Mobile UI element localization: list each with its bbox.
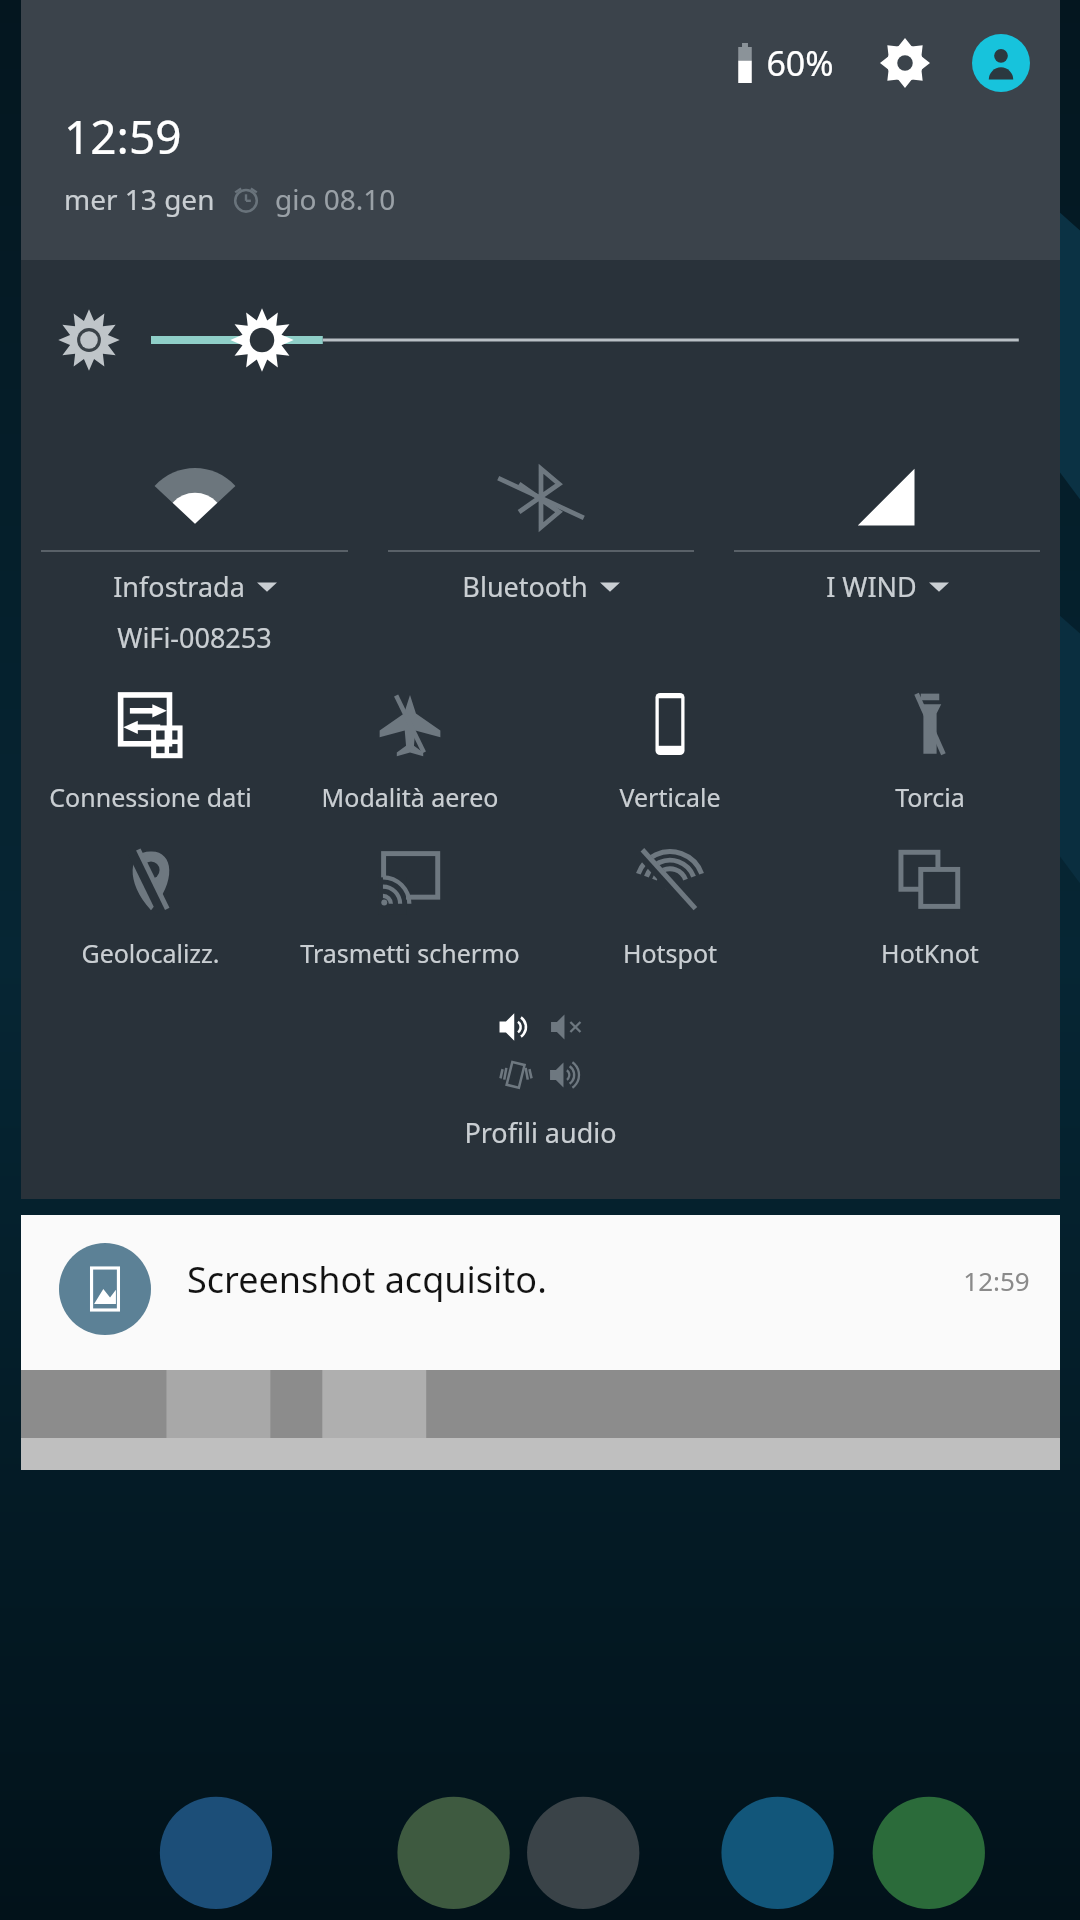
button[interactable]: Profili audio bbox=[21, 1004, 1060, 1199]
staticText: I WIND bbox=[826, 568, 917, 605]
button[interactable]: Trasmetti schermo bbox=[280, 838, 540, 970]
button[interactable]: Torcia bbox=[800, 682, 1060, 814]
staticText: 60% bbox=[766, 40, 834, 86]
staticText: 12:59 bbox=[64, 105, 182, 168]
staticText: Torcia bbox=[804, 780, 1056, 814]
button[interactable]: Hotspot bbox=[540, 838, 800, 970]
button[interactable]: Modalità aereo bbox=[280, 682, 540, 814]
staticText: Bluetooth bbox=[462, 568, 588, 605]
button[interactable] bbox=[151, 305, 1032, 375]
button[interactable]: Verticale bbox=[540, 682, 800, 814]
button[interactable]: Screenshot acquisito. bbox=[21, 1215, 1060, 1370]
staticText: Hotspot bbox=[544, 936, 796, 970]
button[interactable]: I WIND bbox=[714, 450, 1060, 605]
button[interactable]: Geolocalizz. bbox=[21, 838, 280, 970]
button[interactable]: User profile bbox=[972, 34, 1030, 92]
staticText: Connessione dati bbox=[25, 780, 276, 814]
button[interactable]: Settings bbox=[876, 34, 934, 92]
staticText: Modalità aereo bbox=[284, 780, 536, 814]
button[interactable]: HotKnot bbox=[800, 838, 1060, 970]
staticText: WiFi-008253 bbox=[117, 619, 272, 656]
staticText: Profili audio bbox=[464, 1114, 617, 1151]
staticText: Trasmetti schermo bbox=[284, 936, 536, 970]
staticText: HotKnot bbox=[804, 936, 1056, 970]
button[interactable]: Infostrada bbox=[21, 450, 368, 656]
staticText: gio 08.10 bbox=[275, 180, 396, 218]
staticText: Geolocalizz. bbox=[25, 936, 276, 970]
staticText: Verticale bbox=[544, 780, 796, 814]
staticText: mer 13 gen bbox=[64, 180, 215, 218]
staticText: 12:59 bbox=[963, 1263, 1030, 1298]
staticText: Screenshot acquisito. bbox=[187, 1255, 963, 1304]
button[interactable]: Bluetooth bbox=[368, 450, 714, 605]
button[interactable]: Connessione dati bbox=[21, 682, 280, 814]
staticText: Infostrada bbox=[113, 568, 245, 605]
